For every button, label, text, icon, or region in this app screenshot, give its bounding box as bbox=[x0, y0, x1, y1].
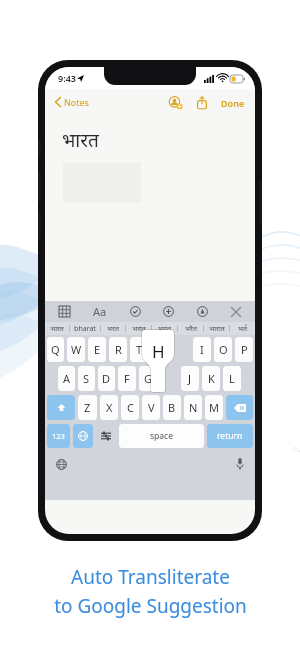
button[interactable]: Table bbox=[57, 304, 72, 319]
button[interactable]: Share bbox=[194, 93, 210, 112]
button[interactable]: भरात bbox=[126, 322, 151, 335]
staticText: J bbox=[188, 371, 192, 386]
button[interactable]: Globe bbox=[54, 457, 69, 472]
button[interactable]: F bbox=[118, 366, 136, 391]
button[interactable]: S bbox=[78, 366, 95, 391]
button[interactable]: W bbox=[67, 337, 85, 362]
button[interactable]: B bbox=[163, 395, 181, 420]
staticText: P bbox=[241, 342, 248, 357]
button[interactable]: भरत bbox=[101, 322, 125, 335]
button[interactable]: V bbox=[142, 395, 160, 420]
staticText: भगत bbox=[158, 324, 171, 334]
button[interactable]: Dictation bbox=[234, 456, 246, 472]
staticText: I bbox=[200, 342, 204, 357]
staticText: L bbox=[229, 371, 235, 386]
button[interactable]: bharat bbox=[70, 322, 100, 335]
staticText: H bbox=[152, 340, 165, 363]
button[interactable]: L bbox=[223, 366, 241, 391]
staticText: space bbox=[150, 430, 173, 442]
staticText: Done bbox=[221, 97, 245, 109]
button[interactable]: D bbox=[98, 366, 115, 391]
button[interactable]: 123 bbox=[47, 424, 70, 448]
button[interactable]: C bbox=[121, 395, 139, 420]
button[interactable]: P bbox=[235, 337, 253, 362]
staticText: to Google Suggestion bbox=[54, 593, 247, 619]
staticText: भरात bbox=[132, 324, 146, 334]
button[interactable]: Shift bbox=[47, 395, 75, 420]
button[interactable]: A bbox=[58, 366, 75, 391]
button[interactable]: भारत bbox=[45, 322, 69, 335]
staticText: Q bbox=[51, 342, 60, 357]
button[interactable]: K bbox=[202, 366, 220, 391]
staticText: X bbox=[106, 400, 113, 415]
staticText: D bbox=[102, 371, 111, 386]
button[interactable]: R bbox=[109, 337, 127, 362]
staticText: भरैत bbox=[185, 324, 197, 334]
button[interactable]: Z bbox=[78, 395, 97, 420]
button[interactable]: space bbox=[119, 424, 204, 448]
staticText: Z bbox=[84, 400, 91, 415]
button[interactable]: भरैत bbox=[178, 322, 203, 335]
button[interactable]: Backspace bbox=[226, 395, 253, 420]
staticText: N bbox=[189, 400, 198, 415]
staticText: A bbox=[63, 371, 71, 386]
button[interactable]: Q bbox=[47, 337, 64, 362]
button[interactable]: भगत bbox=[152, 322, 177, 335]
button[interactable]: O bbox=[214, 337, 232, 362]
button[interactable]: N bbox=[184, 395, 202, 420]
staticText: T bbox=[136, 342, 143, 357]
button[interactable]: return bbox=[207, 424, 253, 448]
staticText: W bbox=[71, 342, 82, 357]
staticText: F bbox=[124, 371, 130, 386]
staticText: भरत bbox=[107, 324, 119, 334]
staticText: O bbox=[219, 342, 228, 357]
button[interactable]: I bbox=[193, 337, 211, 362]
staticText: भारत bbox=[62, 127, 99, 153]
button[interactable]: Add bbox=[161, 304, 176, 319]
button[interactable]: Done bbox=[219, 94, 247, 112]
button[interactable]: भारात bbox=[204, 322, 229, 335]
staticText: भारात bbox=[209, 324, 225, 334]
button[interactable]: Keyboard settings bbox=[96, 424, 116, 448]
staticText: Notes bbox=[64, 96, 89, 108]
button[interactable]: J bbox=[181, 366, 199, 391]
button[interactable]: Notes bbox=[53, 93, 91, 111]
button[interactable]: Checklist bbox=[128, 304, 143, 319]
button[interactable]: G bbox=[139, 366, 157, 391]
staticText: S bbox=[83, 371, 90, 386]
button[interactable]: Close keyboard bbox=[229, 305, 243, 319]
staticText: E bbox=[94, 342, 101, 357]
staticText: R bbox=[115, 342, 122, 357]
staticText: bharat bbox=[74, 324, 96, 334]
staticText: Aa bbox=[93, 304, 107, 319]
button[interactable]: T bbox=[130, 337, 148, 362]
button[interactable]: X bbox=[100, 395, 118, 420]
button[interactable]: E bbox=[88, 337, 106, 362]
button[interactable]: Add people bbox=[166, 93, 185, 112]
staticText: भर्त bbox=[238, 324, 247, 334]
staticText: भारत bbox=[50, 324, 64, 334]
staticText: C bbox=[127, 400, 134, 415]
staticText: M bbox=[209, 400, 219, 415]
button[interactable]: Aa bbox=[91, 302, 109, 321]
button[interactable]: Markup bbox=[195, 304, 210, 319]
staticText: 9:43 bbox=[58, 72, 76, 84]
staticText: K bbox=[208, 371, 215, 386]
staticText: Auto Transliterate bbox=[71, 564, 230, 590]
staticText: 123 bbox=[52, 431, 65, 441]
staticText: return bbox=[217, 430, 243, 442]
button[interactable]: Change keyboard bbox=[73, 424, 93, 448]
staticText: V bbox=[148, 400, 155, 415]
staticText: G bbox=[144, 371, 153, 386]
button[interactable]: M bbox=[205, 395, 223, 420]
staticText: B bbox=[168, 400, 176, 415]
button[interactable]: भर्त bbox=[230, 322, 255, 335]
